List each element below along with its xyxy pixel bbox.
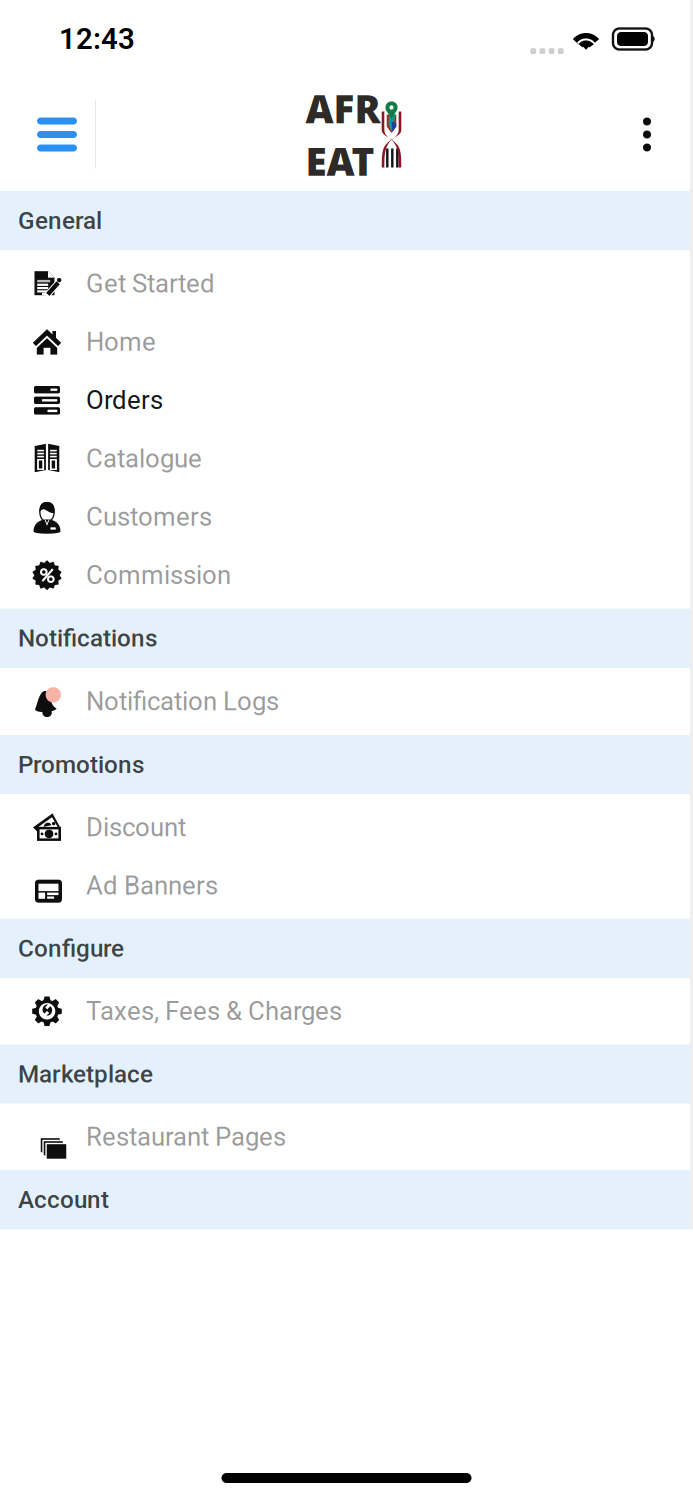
staticText: Notification Logs (86, 686, 279, 717)
button[interactable]: Get Started (0, 254, 693, 313)
button[interactable]: Restaurant Pages (0, 1108, 693, 1166)
button[interactable]: Catalogue (0, 429, 693, 488)
staticText: Discount (86, 812, 186, 842)
button[interactable]: Menu (19, 84, 95, 184)
staticText: 12:43 (59, 22, 135, 56)
staticText: Promotions (18, 750, 144, 779)
button[interactable]: Taxes, Fees & Charges (0, 982, 693, 1040)
button[interactable]: Notification Logs (0, 672, 693, 731)
staticText: Catalogue (86, 443, 202, 474)
staticText: Taxes, Fees & Charges (86, 996, 342, 1026)
staticText: Customers (86, 502, 212, 532)
staticText: Orders (86, 385, 163, 415)
button[interactable]: Home (0, 313, 693, 371)
staticText: Notifications (18, 624, 157, 652)
button[interactable]: Discount (0, 798, 693, 857)
button[interactable]: Orders (0, 371, 693, 429)
staticText: General (18, 206, 102, 235)
staticText: Commission (86, 560, 231, 590)
button[interactable]: Ad Banners (0, 857, 693, 915)
staticText: Marketplace (18, 1060, 153, 1088)
staticText: Get Started (86, 269, 215, 299)
staticText: Configure (18, 934, 124, 963)
staticText: AFR (305, 83, 380, 134)
staticText: EAT (305, 135, 374, 186)
button[interactable]: More options (612, 84, 682, 184)
staticText: Restaurant Pages (86, 1122, 286, 1152)
staticText: Home (86, 327, 156, 357)
button[interactable]: Commission (0, 546, 693, 604)
button[interactable]: Customers (0, 488, 693, 546)
staticText: Account (18, 1186, 109, 1214)
staticText: Ad Banners (86, 871, 218, 901)
